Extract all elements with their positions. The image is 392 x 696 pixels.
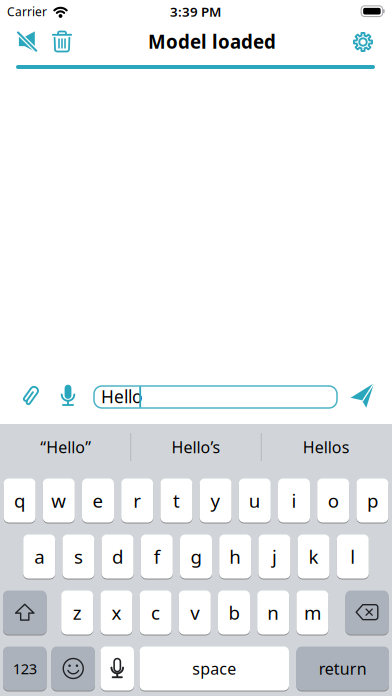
button[interactable]: d xyxy=(102,534,134,578)
button[interactable]: b xyxy=(218,590,250,634)
button[interactable]: i xyxy=(278,478,310,522)
button[interactable]: “Hello” xyxy=(6,427,126,467)
staticText: h xyxy=(229,544,241,569)
button[interactable]: a xyxy=(23,534,55,578)
button[interactable]: x xyxy=(100,590,132,634)
button[interactable]: m xyxy=(296,590,328,634)
staticText: n xyxy=(267,600,279,625)
staticText: “Hello” xyxy=(40,436,91,458)
staticText: q xyxy=(14,488,25,513)
button[interactable]: Attach file xyxy=(15,380,43,410)
staticText: 123 xyxy=(13,659,37,678)
button[interactable]: y xyxy=(200,478,232,522)
button[interactable]: space xyxy=(139,646,289,690)
button[interactable]: f xyxy=(141,534,173,578)
button[interactable]: k xyxy=(298,534,330,578)
staticText: Carrier xyxy=(7,4,47,20)
button[interactable]: Shift xyxy=(3,590,46,634)
button[interactable]: Numbers xyxy=(3,646,46,690)
button[interactable]: j xyxy=(258,534,290,578)
button[interactable]: Emoji xyxy=(51,646,95,690)
staticText: u xyxy=(249,488,261,513)
staticText: d xyxy=(112,544,123,569)
staticText: y xyxy=(211,488,221,513)
button[interactable]: z xyxy=(61,590,93,634)
staticText: Hello’s xyxy=(171,436,220,458)
button[interactable]: Delete xyxy=(345,590,388,634)
staticText: space xyxy=(192,658,236,679)
button[interactable]: e xyxy=(82,478,114,522)
staticText: l xyxy=(350,544,355,569)
staticText: e xyxy=(92,488,103,513)
button[interactable]: l xyxy=(337,534,369,578)
staticText: m xyxy=(304,600,321,625)
button[interactable]: Hellos xyxy=(266,427,386,467)
staticText: o xyxy=(328,488,339,513)
staticText: z xyxy=(73,600,82,625)
button[interactable]: r xyxy=(121,478,153,522)
staticText: f xyxy=(154,544,160,569)
staticText: Hellos xyxy=(303,436,350,458)
button[interactable]: Dictation xyxy=(100,646,134,690)
button[interactable]: n xyxy=(257,590,289,634)
staticText: return xyxy=(319,658,367,679)
staticText: k xyxy=(309,544,319,569)
button[interactable]: Settings xyxy=(348,27,378,57)
staticText: t xyxy=(173,488,180,513)
staticText: Hello xyxy=(101,385,142,408)
staticText: b xyxy=(228,600,239,625)
button[interactable]: u xyxy=(239,478,271,522)
button[interactable]: Hello’s xyxy=(136,427,256,467)
staticText: x xyxy=(111,600,121,625)
button[interactable]: Dictate xyxy=(56,381,80,409)
button[interactable]: v xyxy=(179,590,211,634)
button[interactable]: t xyxy=(160,478,192,522)
button[interactable]: return xyxy=(296,646,389,690)
staticText: j xyxy=(272,544,277,569)
button[interactable]: h xyxy=(219,534,251,578)
button[interactable]: g xyxy=(180,534,212,578)
staticText: v xyxy=(190,600,199,625)
button[interactable]: c xyxy=(140,590,172,634)
button[interactable]: o xyxy=(317,478,349,522)
button[interactable]: s xyxy=(62,534,94,578)
staticText: s xyxy=(74,544,83,569)
staticText: r xyxy=(133,488,141,513)
staticText: Model loaded xyxy=(148,29,276,54)
staticText: c xyxy=(151,600,160,625)
staticText: a xyxy=(34,544,44,569)
button[interactable]: w xyxy=(43,478,75,522)
staticText: w xyxy=(51,488,66,513)
button[interactable]: Delete conversation xyxy=(48,26,76,56)
button[interactable]: Send xyxy=(347,380,377,410)
button[interactable]: q xyxy=(4,478,36,522)
staticText: p xyxy=(367,488,378,513)
staticText: 3:39 PM xyxy=(170,3,221,20)
button[interactable]: Mute xyxy=(13,26,43,56)
button[interactable]: p xyxy=(356,478,388,522)
staticText: g xyxy=(190,544,201,569)
staticText: i xyxy=(291,488,296,513)
